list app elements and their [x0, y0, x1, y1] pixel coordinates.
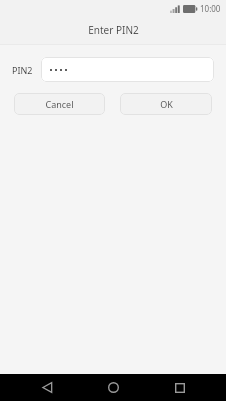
button[interactable]: Home — [93, 374, 133, 401]
staticText: 10:00 — [200, 3, 221, 14]
button[interactable]: Recent apps — [160, 374, 200, 401]
staticText: PIN2 — [12, 64, 33, 76]
button[interactable]: OK — [120, 93, 212, 115]
button[interactable]: Cancel — [14, 93, 105, 115]
button[interactable]: Back — [27, 374, 67, 401]
staticText: OK — [160, 98, 173, 110]
staticText: Cancel — [45, 98, 74, 110]
staticText: Enter PIN2 — [88, 23, 139, 37]
button[interactable] — [41, 57, 214, 82]
